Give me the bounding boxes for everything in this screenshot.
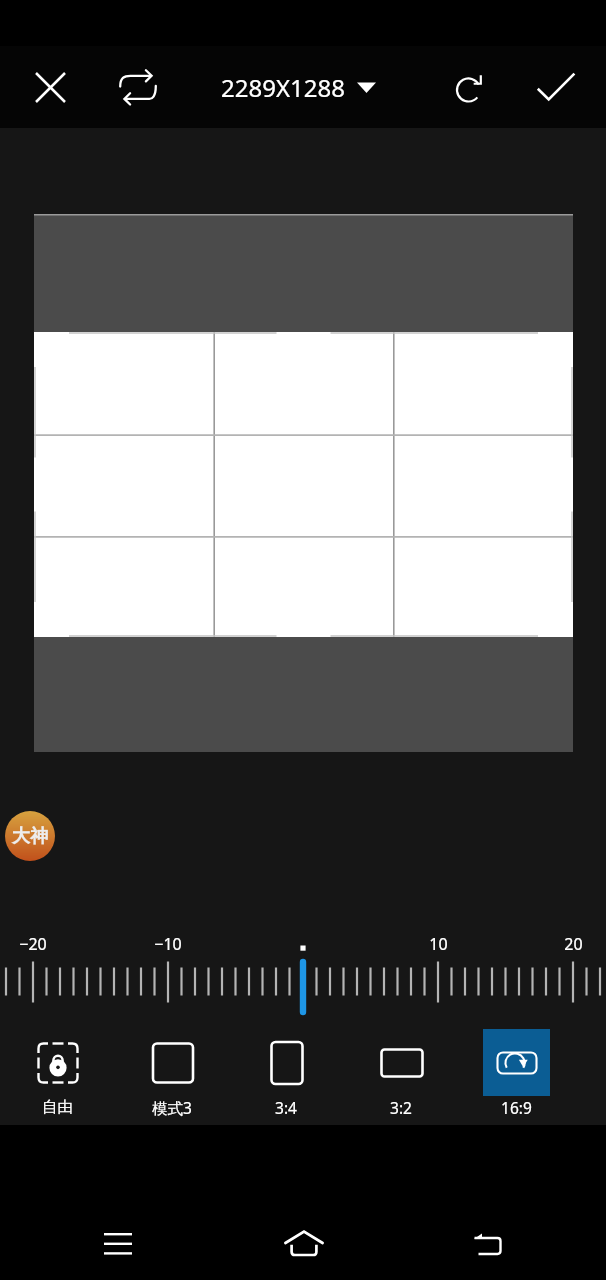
staticText: −20 [19, 933, 47, 955]
button[interactable]: Home [269, 1208, 339, 1278]
button[interactable]: App badge [5, 811, 55, 861]
button[interactable]: 3:4 [246, 1029, 326, 1118]
button[interactable]: Flip [104, 53, 172, 121]
button[interactable]: Recents [83, 1209, 153, 1279]
button[interactable]: 模式3 [132, 1029, 212, 1118]
button[interactable]: Crop image [34, 214, 573, 752]
button[interactable]: Done [522, 53, 590, 121]
button[interactable]: 16:9 [476, 1029, 556, 1118]
button[interactable]: Rotate [434, 53, 502, 121]
staticText: 2289X1288 [221, 71, 345, 104]
button[interactable]: Rotation angle [0, 933, 606, 1015]
button[interactable]: 自由 [17, 1029, 97, 1117]
staticText: 3:2 [390, 1097, 412, 1118]
staticText: 16:9 [501, 1097, 532, 1118]
button[interactable]: Close [16, 53, 84, 121]
staticText: 10 [429, 933, 448, 955]
button[interactable]: 2289X1288 [221, 56, 376, 118]
button[interactable]: 3:2 [361, 1029, 441, 1118]
staticText: 自由 [42, 1097, 73, 1117]
staticText: 20 [564, 933, 583, 955]
staticText: 模式3 [152, 1097, 192, 1118]
staticText: 3:4 [275, 1097, 297, 1118]
staticText: 大神 [12, 825, 48, 848]
button[interactable]: Back [452, 1208, 522, 1278]
staticText: −10 [154, 933, 182, 955]
